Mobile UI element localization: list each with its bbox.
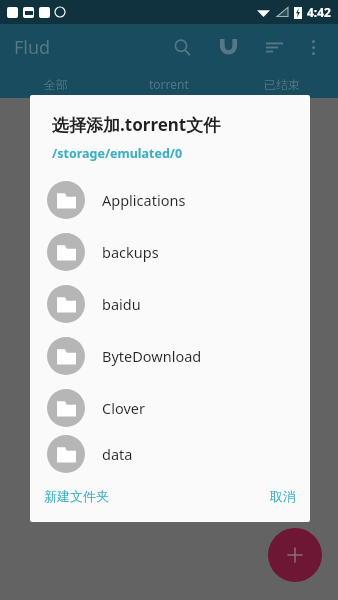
button[interactable]: 取消 <box>256 480 310 512</box>
button[interactable]: torrent <box>112 70 225 98</box>
staticText: 添加一个种子或磁力链接。 <box>91 293 247 309</box>
button[interactable]: 全部 <box>0 70 112 98</box>
button[interactable]: More options <box>296 30 330 64</box>
button[interactable]: data <box>30 434 310 474</box>
button[interactable]: Clover <box>30 382 310 434</box>
staticText: data <box>102 444 133 464</box>
button[interactable]: 已结束 <box>225 70 338 98</box>
staticText: Applications <box>102 190 186 210</box>
staticText: ByteDownload <box>102 346 202 366</box>
staticText: torrent <box>149 76 189 92</box>
staticText: 选择添加.torrent文件 <box>52 113 221 136</box>
button[interactable]: Add magnet link <box>210 29 246 65</box>
button[interactable]: Add torrent <box>268 528 322 582</box>
button[interactable]: Applications <box>30 174 310 226</box>
staticText: 全部 <box>44 77 68 92</box>
staticText: 新建文件夹 <box>44 488 109 504</box>
button[interactable]: baidu <box>30 278 310 330</box>
staticText: 已结束 <box>264 77 300 92</box>
button[interactable]: Sort <box>256 29 292 65</box>
button[interactable]: backups <box>30 226 310 278</box>
staticText: backups <box>102 242 159 262</box>
staticText: Flud <box>14 35 51 60</box>
staticText: 取消 <box>270 488 296 504</box>
staticText: 4:42 <box>307 4 331 20</box>
staticText: Clover <box>102 398 145 418</box>
button[interactable]: ByteDownload <box>30 330 310 382</box>
staticText: /storage/emulated/0 <box>52 145 183 162</box>
staticText: baidu <box>102 294 141 314</box>
staticText: 您还没有添加任何种子任务,点击右下角按钮来 <box>37 269 301 287</box>
button[interactable]: Search <box>164 29 200 65</box>
button[interactable]: 新建文件夹 <box>30 480 123 512</box>
